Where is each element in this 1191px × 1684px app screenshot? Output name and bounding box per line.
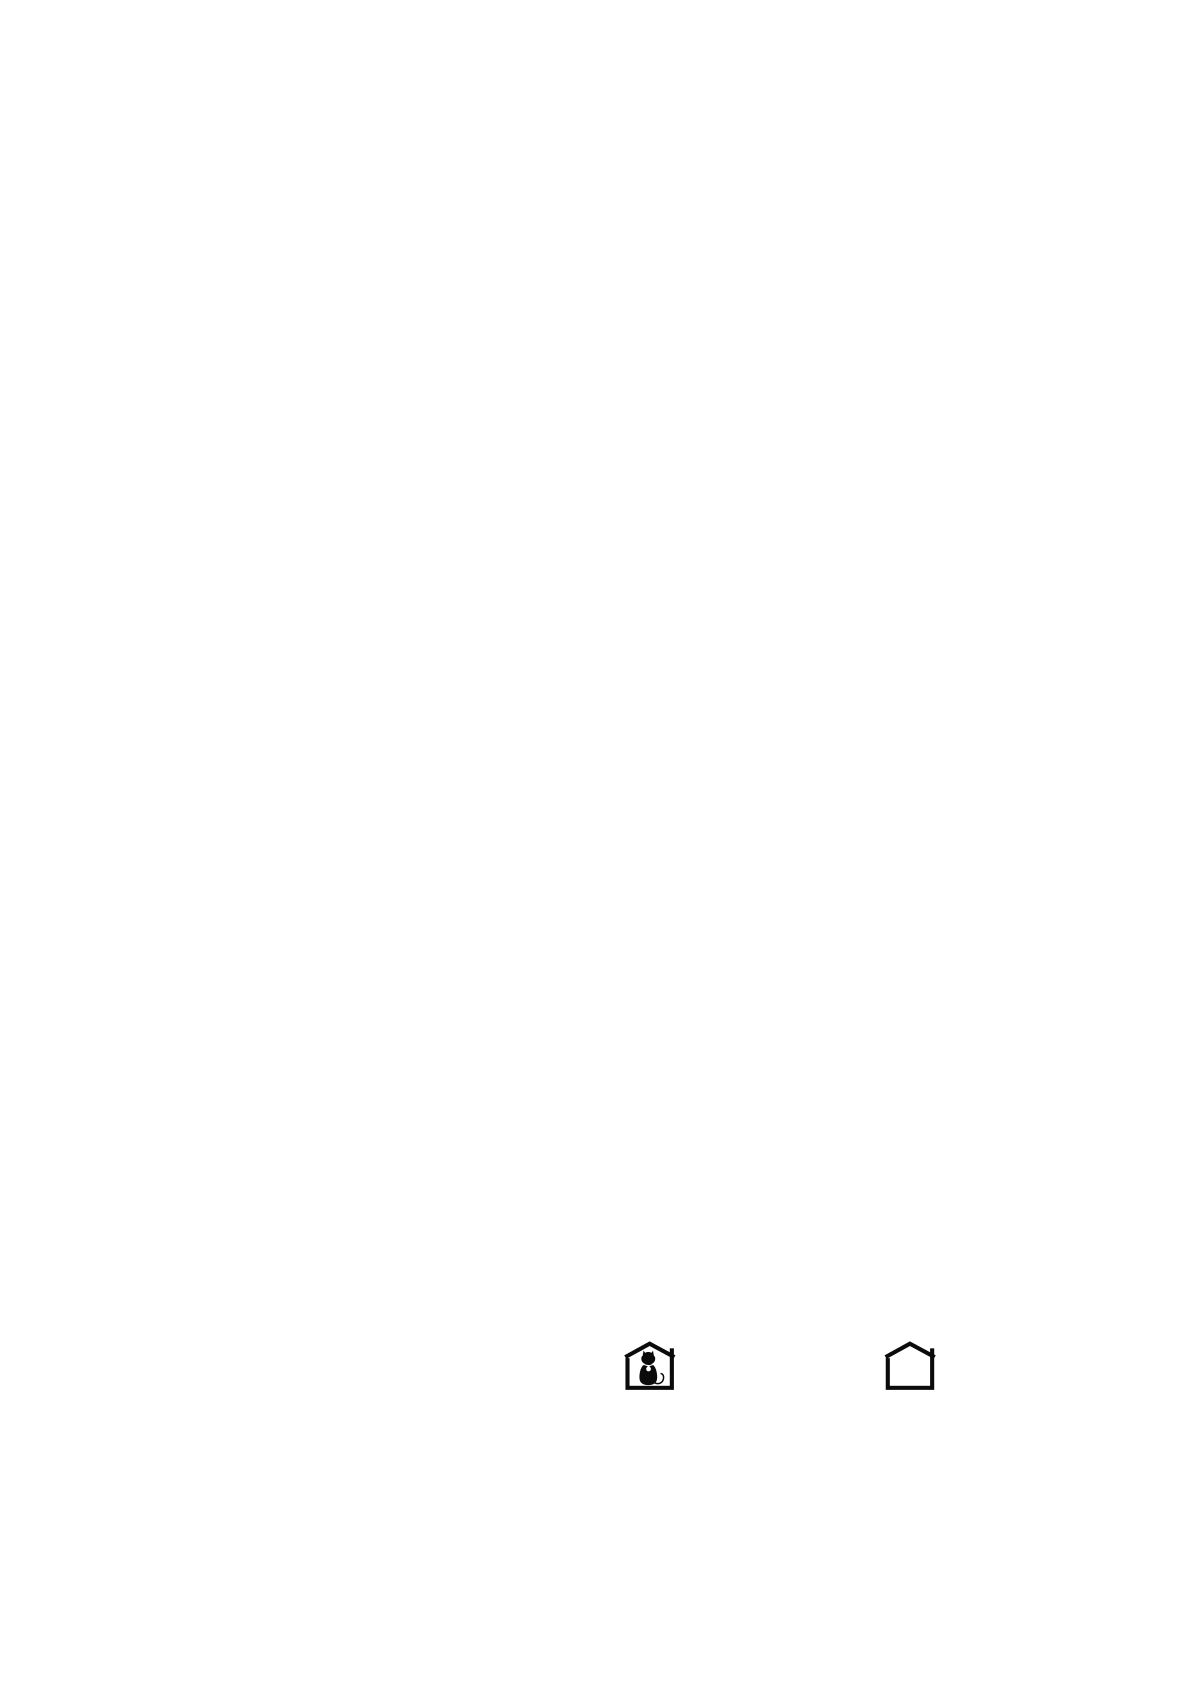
button[interactable]: Cat at home — [624, 1340, 676, 1392]
button[interactable]: House — [884, 1340, 936, 1392]
